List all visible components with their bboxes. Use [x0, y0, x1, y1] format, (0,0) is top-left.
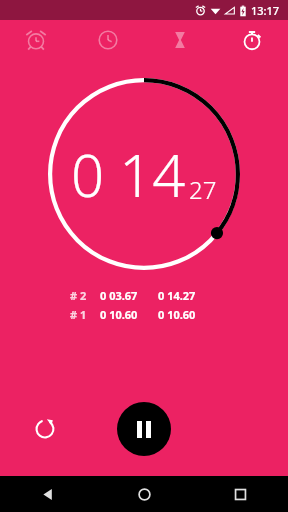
button[interactable]: Home: [96, 476, 192, 512]
staticText: 0 10.60: [158, 307, 196, 322]
button[interactable]: Back: [0, 476, 96, 512]
staticText: # 2: [70, 288, 87, 303]
button[interactable]: Stopwatch: [216, 20, 288, 60]
button[interactable]: Recents: [192, 476, 288, 512]
staticText: # 1: [70, 307, 87, 322]
staticText: 0 10.60: [100, 307, 138, 322]
staticText: 27: [189, 173, 217, 206]
staticText: 13:17: [251, 3, 280, 18]
staticText: 0 14: [71, 135, 186, 214]
button[interactable]: # 1: [70, 307, 218, 322]
staticText: 0 03.67: [100, 288, 138, 303]
button[interactable]: Reset: [28, 412, 62, 446]
button[interactable]: Clock: [72, 20, 144, 60]
button[interactable]: Alarm: [0, 20, 72, 60]
button[interactable]: Timer: [144, 20, 216, 60]
button[interactable]: # 2: [70, 288, 218, 303]
button[interactable]: Pause: [117, 402, 171, 456]
staticText: 0 14.27: [158, 288, 196, 303]
